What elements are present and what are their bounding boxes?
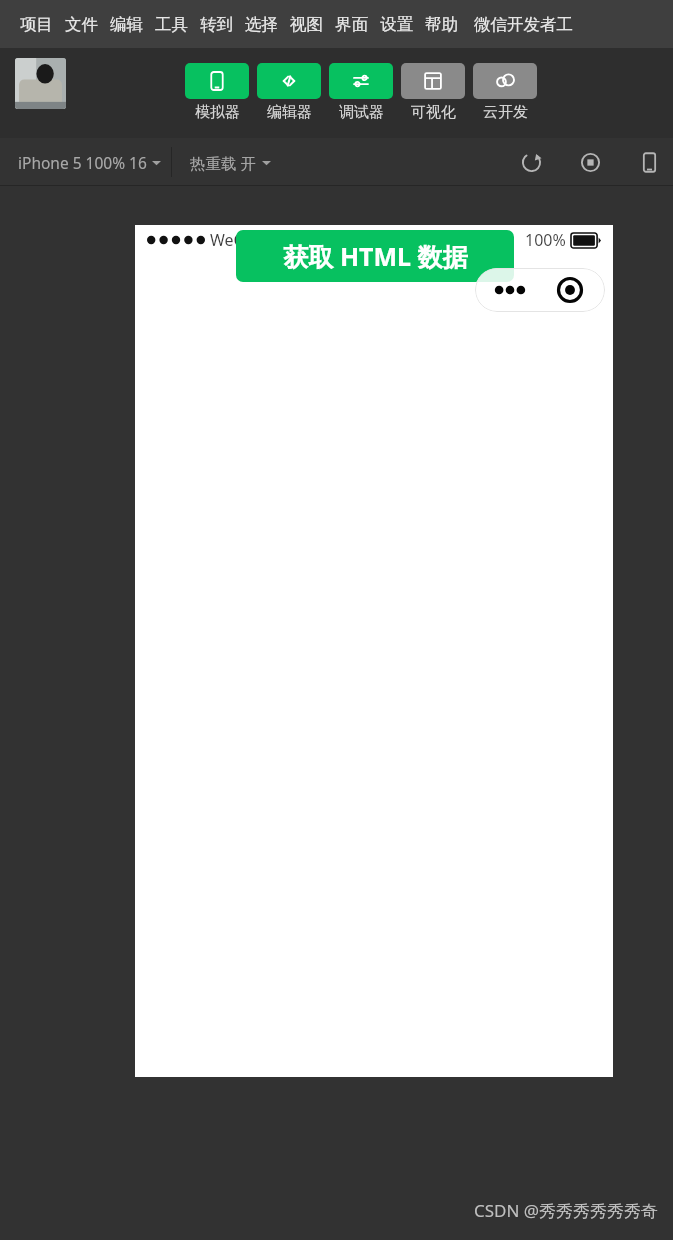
button[interactable]: 文件 [59,14,104,35]
staticText: 云开发 [483,103,528,122]
staticText: 微信开发者工 [474,14,573,35]
button[interactable]: iPhone 5 100% 16 [0,152,171,173]
button[interactable]: 云开发 [473,63,537,122]
staticText: 设置 [380,14,413,35]
button[interactable]: 获取 HTML 数据 [236,230,514,282]
staticText: WeChat [210,229,269,251]
staticText: 编辑器 [267,103,312,122]
staticText: 获取 HTML 数据 [283,239,468,273]
button[interactable]: More [484,268,536,312]
button[interactable]: 微信开发者工 [470,14,577,35]
button[interactable]: 设置 [374,14,419,35]
button[interactable]: 编辑 [104,14,149,35]
button[interactable]: 界面 [329,14,374,35]
button[interactable]: 工具 [149,14,194,35]
button[interactable]: 转到 [194,14,239,35]
staticText: 视图 [290,14,323,35]
button[interactable]: 视图 [284,14,329,35]
button[interactable]: 可视化 [401,63,465,122]
button[interactable]: Close [544,268,596,312]
button[interactable]: 帮助 [419,14,464,35]
button[interactable]: Stop [570,142,610,182]
button[interactable]: 编辑器 [257,63,321,122]
button[interactable]: 项目 [14,14,59,35]
staticText: 100% [525,229,566,251]
staticText: 编辑 [110,14,143,35]
staticText: 界面 [335,14,368,35]
staticText: 模拟器 [195,103,240,122]
button[interactable]: Profile [15,58,66,109]
staticText: 转到 [200,14,233,35]
button[interactable]: Device [629,142,669,182]
staticText: 帮助 [425,14,458,35]
staticText: iPhone 5 100% 16 [18,152,147,173]
staticText: 10:23 [386,229,427,251]
staticText: 可视化 [411,103,456,122]
staticText: 项目 [20,14,53,35]
button[interactable]: 选择 [239,14,284,35]
staticText: 调试器 [339,103,384,122]
button[interactable]: 调试器 [329,63,393,122]
staticText: 工具 [155,14,188,35]
button[interactable]: 模拟器 [185,63,249,122]
staticText: 文件 [65,14,98,35]
staticText: CSDN @秀秀秀秀秀秀奇 [474,1199,659,1222]
staticText: 选择 [245,14,278,35]
button[interactable]: Refresh [511,142,551,182]
staticText: 热重载 开 [190,152,257,173]
button[interactable]: 热重载 开 [172,152,281,173]
